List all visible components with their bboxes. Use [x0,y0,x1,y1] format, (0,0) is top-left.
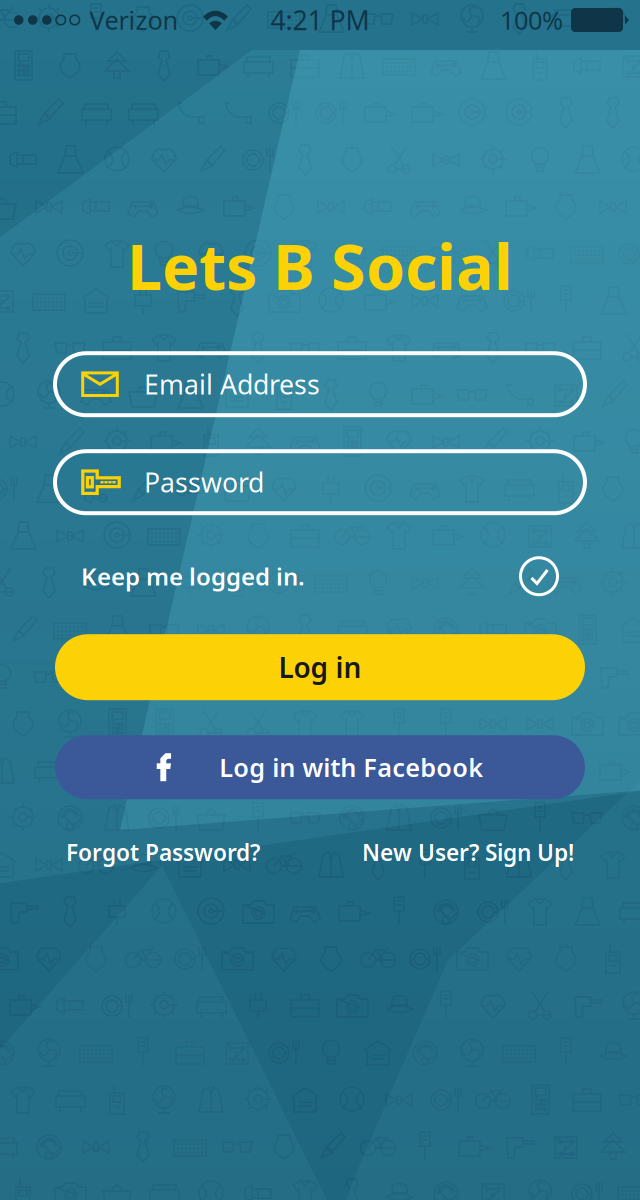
staticText: Verizon [89,3,178,37]
staticText: Log in [278,649,361,686]
button[interactable]: Log in [55,634,585,700]
button[interactable]: Log in with Facebook [55,735,585,799]
staticText: Password [144,464,264,500]
button[interactable]: Password [55,451,585,513]
staticText: 100% [500,3,563,37]
staticText: 4:21 PM [270,2,369,38]
button[interactable]: New User? Sign Up! [362,837,574,867]
staticText: Log in with Facebook [219,750,483,784]
button[interactable]: Forgot Password? [66,837,260,867]
staticText: Forgot Password? [66,837,260,867]
staticText: Email Address [144,366,320,402]
staticText: New User? Sign Up! [362,837,574,867]
button[interactable]: Keep me logged in. [55,554,585,598]
staticText: Lets B Social [127,224,513,307]
button[interactable]: Email Address [55,353,585,415]
staticText: Keep me logged in. [81,560,305,592]
